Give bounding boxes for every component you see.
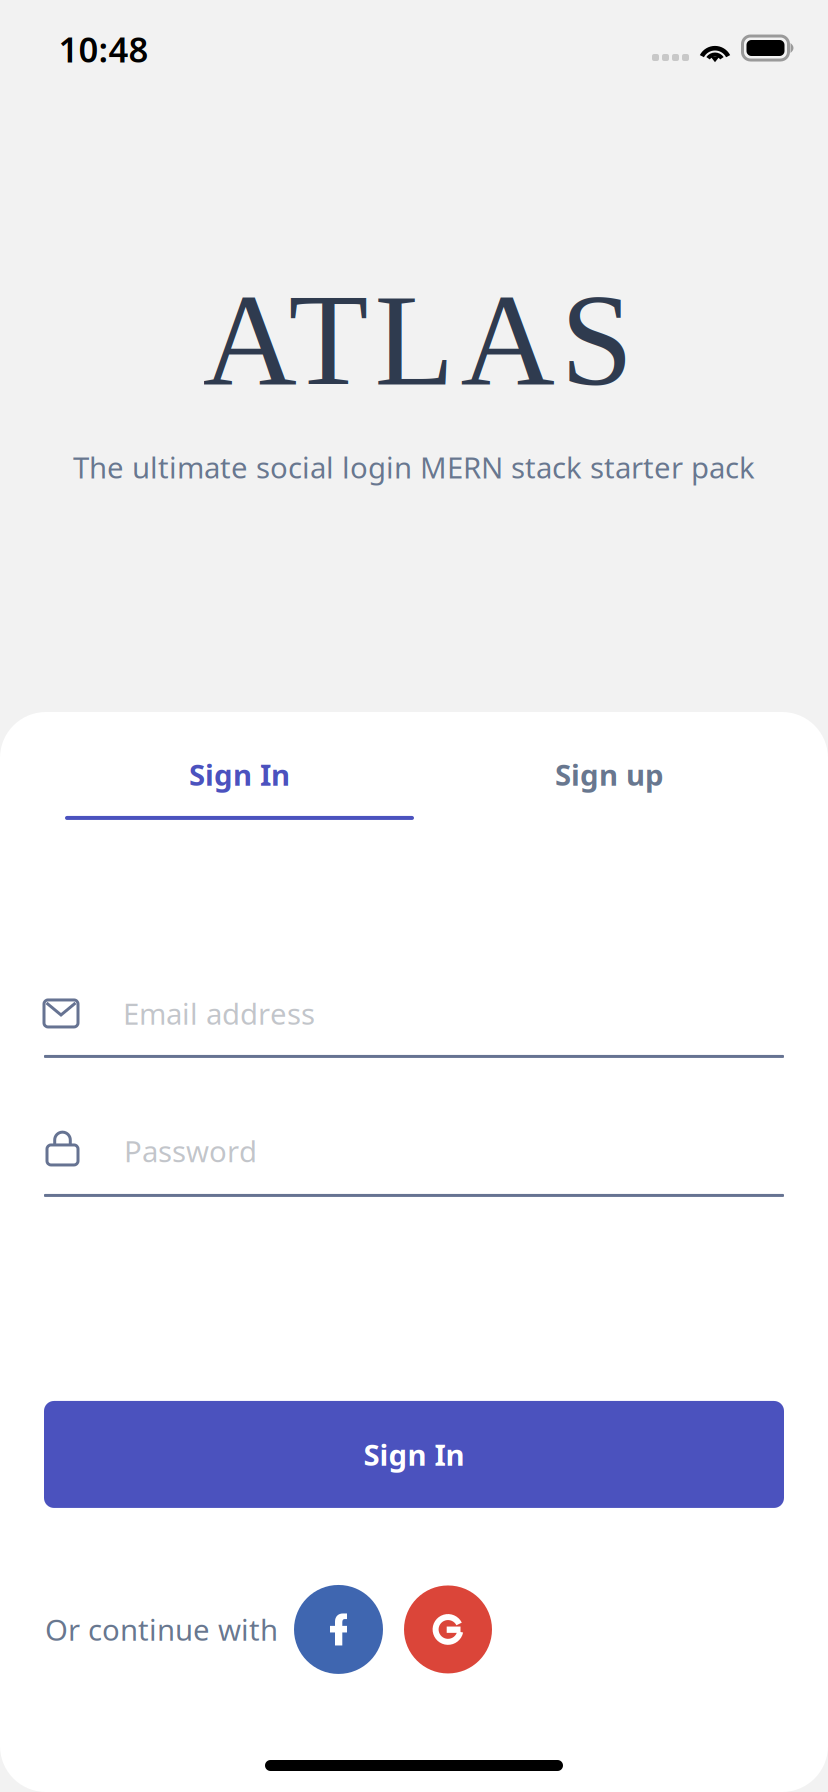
staticText: ATLAS — [202, 268, 633, 413]
staticText: Password — [124, 1131, 257, 1170]
staticText: Sign up — [555, 755, 664, 794]
staticText: Sign In — [363, 1435, 464, 1474]
staticText: Sign In — [189, 755, 290, 794]
staticText: The ultimate social login MERN stack sta… — [73, 448, 755, 487]
staticText: Email address — [123, 994, 315, 1033]
button[interactable]: Sign up — [414, 712, 805, 820]
button[interactable]: Continue with Facebook — [294, 1585, 383, 1674]
button[interactable]: Continue with Google — [404, 1585, 492, 1673]
button[interactable]: Sign In — [65, 712, 414, 820]
staticText: Or continue with — [45, 1610, 278, 1649]
button[interactable]: Sign In — [44, 1401, 784, 1508]
staticText: 10:48 — [58, 26, 148, 72]
